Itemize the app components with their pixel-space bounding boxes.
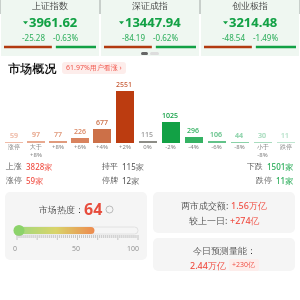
staticText: -8% [234,143,245,151]
staticText: -2% [165,143,176,151]
staticText: 3214.48 [229,13,278,31]
staticText: -48.54 [222,32,246,43]
staticText: 59 [10,131,19,141]
staticText: 上涨 [6,161,22,171]
staticText: 12家 [122,175,140,186]
staticText: 61.97%用户看涨 › [66,63,122,73]
staticText: 97 [32,130,41,140]
staticText: +4% [96,143,108,151]
staticText: 3828家 [26,161,53,172]
staticText: 44 [235,131,244,141]
other: 说明 [106,206,113,213]
staticText: 上证指数 [32,0,68,11]
staticText: 深证成指 [132,0,168,11]
staticText: 跌停 [256,175,272,185]
button[interactable]: 市场热度： [5,192,147,260]
staticText: +230亿 [232,260,256,270]
staticText: 2551 [116,80,133,90]
staticText: 296 [187,126,200,136]
staticText: +274亿 [230,214,260,226]
button[interactable]: 今日预测量能： [153,238,295,271]
staticText: 1501家 [267,161,294,172]
staticText: 11 [281,131,290,141]
staticText: 0 [13,244,55,254]
staticText: +8% [52,143,64,151]
staticText: -0.63% [53,32,79,43]
staticText: 30 [258,131,267,141]
button[interactable]: 上证指数 [1,0,99,56]
staticText: 115家 [122,161,144,172]
staticText: 创业板指 [232,0,268,11]
staticText: 跌停 [280,143,292,151]
button[interactable]: 两市成交额: [153,192,295,233]
staticText: 50 [55,244,97,254]
staticText: 1.56万亿 [231,199,267,211]
staticText: 较上一日: [189,214,230,226]
staticText: 小于 [257,143,269,151]
staticText: 今日预测量能： [193,245,256,256]
staticText: -6% [211,143,222,151]
staticText: 2.44万亿 [190,259,226,271]
button[interactable]: 深证成指 [101,0,199,56]
staticText: -84.19 [122,32,146,43]
staticText: 106 [210,130,223,140]
staticText: 677 [96,118,109,128]
staticText: 市场概况 [8,61,56,76]
staticText: 涨停 [6,175,22,185]
staticText: 两市成交额: [181,199,231,211]
staticText: -4% [188,143,199,151]
staticText: 59家 [26,175,44,186]
button[interactable]: 创业板指 [201,0,299,56]
staticText: 涨停 [8,143,20,151]
staticText: 0% [143,143,152,151]
staticText: 停牌 [102,175,118,185]
staticText: -1.49% [253,32,279,43]
staticText: +8% [30,151,42,159]
staticText: 3961.62 [29,13,78,31]
button[interactable]: 61.97%用户看涨 › [62,62,126,74]
staticText: 下跌 [247,161,263,171]
staticText: +6% [74,143,86,151]
staticText: +2% [119,143,131,151]
staticText: 1025 [162,111,179,121]
staticText: 64 [84,198,103,220]
staticText: 大于 [30,143,42,151]
staticText: 持平 [102,161,118,171]
staticText: 13447.94 [125,13,181,31]
staticText: 115 [141,130,154,140]
staticText: 11家 [276,175,294,186]
staticText: 100 [97,244,139,254]
staticText: 77 [54,130,63,140]
staticText: -0.62% [153,32,179,43]
staticText: -25.28 [22,32,46,43]
staticText: 市场热度： [39,204,84,215]
staticText: -8% [257,151,268,159]
staticText: 226 [74,127,87,137]
